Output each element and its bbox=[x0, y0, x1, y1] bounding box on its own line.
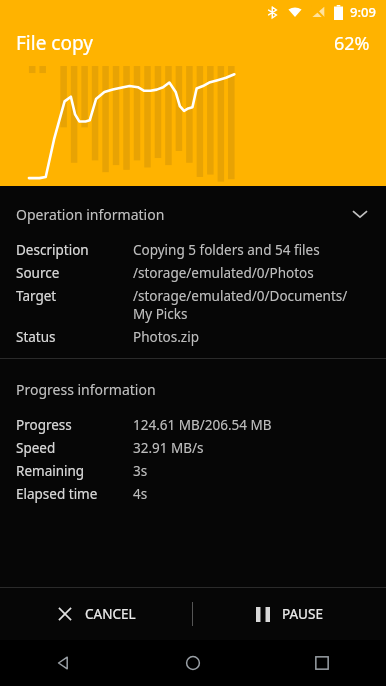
staticText: /storage/emulated/0/Documents/ My Picks bbox=[133, 287, 348, 323]
staticText: Progress bbox=[16, 416, 133, 434]
staticText: Photos.zip bbox=[133, 328, 199, 346]
staticText: Elapsed time bbox=[16, 485, 133, 503]
staticText: Copying 5 folders and 54 files bbox=[133, 241, 320, 259]
staticText: PAUSE bbox=[282, 605, 323, 623]
button[interactable]: PAUSE bbox=[193, 588, 386, 640]
staticText: Source bbox=[16, 264, 133, 282]
staticText: CANCEL bbox=[85, 605, 136, 623]
button[interactable]: Operation information bbox=[0, 196, 386, 230]
button[interactable]: Home bbox=[128, 640, 257, 686]
other: Collapse bbox=[350, 204, 370, 224]
staticText: 32.91 MB/s bbox=[133, 439, 204, 457]
staticText: Operation information bbox=[16, 205, 165, 224]
staticText: Target bbox=[16, 287, 133, 305]
staticText: File copy bbox=[16, 30, 93, 56]
staticText: 3s bbox=[133, 462, 148, 480]
button[interactable]: CANCEL bbox=[0, 588, 192, 640]
button[interactable]: Recent apps bbox=[257, 640, 386, 686]
staticText: /storage/emulated/0/Photos bbox=[133, 264, 314, 282]
staticText: Description bbox=[16, 241, 133, 259]
staticText: Progress information bbox=[16, 380, 156, 399]
staticText: Status bbox=[16, 328, 133, 346]
staticText: Remaining bbox=[16, 462, 133, 480]
staticText: Speed bbox=[16, 439, 133, 457]
staticText: 9:09 bbox=[350, 3, 376, 21]
button[interactable]: Back bbox=[0, 640, 128, 686]
staticText: 62% bbox=[334, 31, 370, 56]
staticText: 124.61 MB/206.54 MB bbox=[133, 416, 272, 434]
staticText: 4s bbox=[133, 485, 148, 503]
